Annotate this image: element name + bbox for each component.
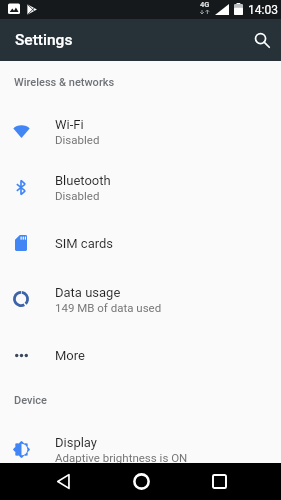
staticText: 14:03: [248, 3, 278, 17]
staticText: Wireless & networks: [14, 76, 115, 89]
button[interactable]: Display: [0, 421, 281, 477]
staticText: Device: [14, 394, 47, 407]
button[interactable]: Wi-Fi: [0, 103, 281, 159]
button[interactable]: Search: [246, 24, 278, 56]
staticText: Disabled: [55, 189, 100, 202]
staticText: Adaptive brightness is ON: [55, 451, 188, 464]
staticText: SIM cards: [55, 236, 114, 251]
staticText: Bluetooth: [55, 173, 111, 188]
staticText: 4G: [200, 0, 210, 9]
button[interactable]: SIM cards: [0, 215, 281, 271]
button[interactable]: Data usage: [0, 271, 281, 327]
staticText: Settings: [15, 31, 73, 49]
staticText: Display: [55, 435, 97, 450]
button[interactable]: Home: [119, 463, 163, 500]
staticText: 149 MB of data used: [55, 301, 162, 314]
staticText: Data usage: [55, 285, 121, 300]
button[interactable]: More: [0, 327, 281, 383]
staticText: Wi-Fi: [55, 117, 84, 132]
staticText: More: [55, 348, 85, 363]
button[interactable]: Recents: [197, 463, 241, 500]
button[interactable]: Bluetooth: [0, 159, 281, 215]
button[interactable]: Back: [41, 463, 85, 500]
staticText: Disabled: [55, 133, 100, 146]
